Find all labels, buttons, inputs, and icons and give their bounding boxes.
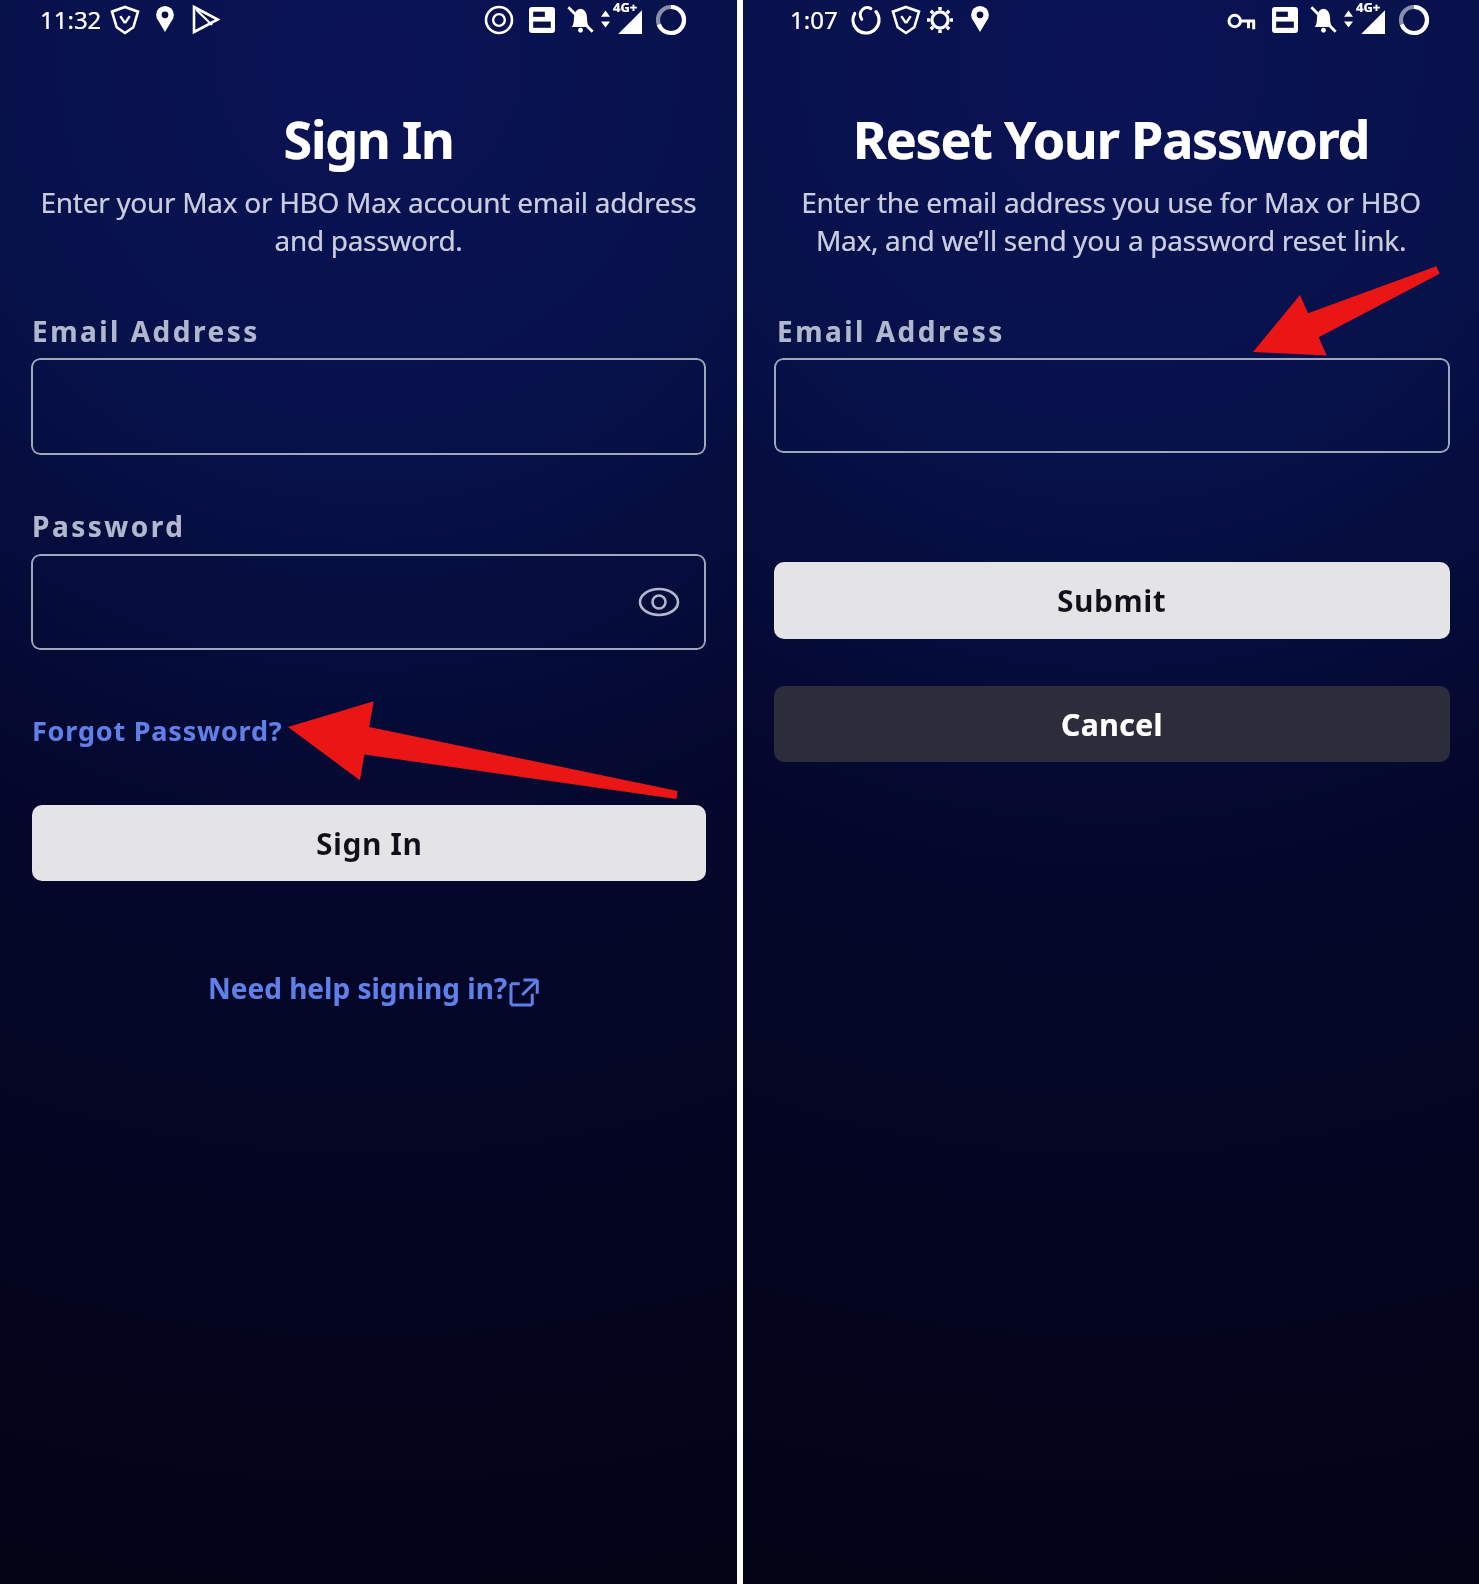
staticText: Enter your Max or HBO Max account email … [0, 183, 737, 259]
staticText: Password [32, 507, 186, 545]
staticText: Sign In [0, 103, 737, 174]
button[interactable]: Sign In [32, 805, 706, 881]
button[interactable] [774, 358, 1450, 453]
staticText: Need help signing in? [208, 969, 508, 1007]
button[interactable] [31, 554, 706, 650]
staticText: Reset Your Password [743, 103, 1479, 174]
staticText: Enter the email address you use for Max … [743, 183, 1479, 259]
button[interactable] [632, 575, 686, 629]
staticText: 1:07 [790, 3, 838, 36]
staticText: Email Address [777, 312, 1005, 350]
staticText: Submit [1057, 580, 1167, 621]
button[interactable]: Forgot Password? [24, 705, 275, 742]
staticText: 4G+ [613, 0, 638, 16]
staticText: Cancel [1061, 704, 1164, 745]
staticText: 11:32 [40, 3, 102, 36]
staticText: 4G+ [1356, 0, 1381, 16]
staticText: Email Address [32, 312, 260, 350]
button[interactable] [31, 358, 706, 455]
staticText: Forgot Password? [32, 712, 283, 749]
button[interactable]: Cancel [774, 686, 1450, 762]
button[interactable]: Submit [774, 562, 1450, 639]
button[interactable]: Need help signing in? [200, 965, 550, 1010]
staticText: Sign In [316, 823, 423, 864]
